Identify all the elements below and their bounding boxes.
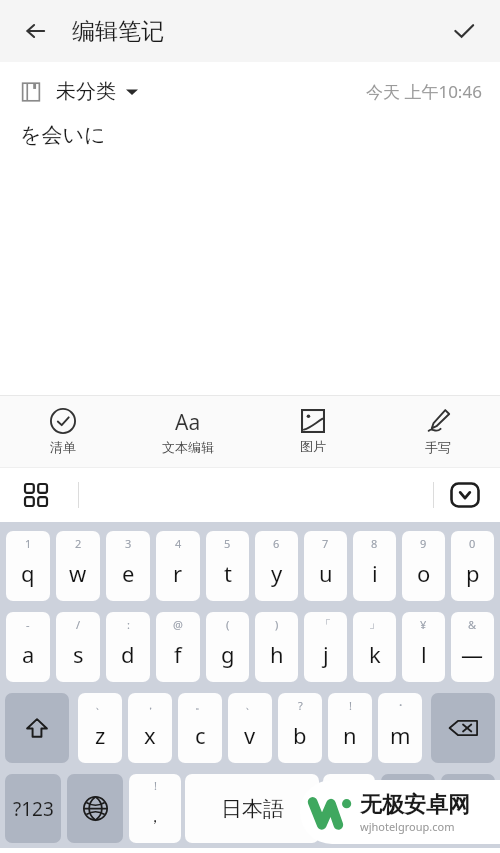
button[interactable]: Back — [14, 9, 58, 53]
staticText: ¥ — [420, 617, 427, 632]
button[interactable]: 、 — [78, 693, 122, 763]
button[interactable]: 「 — [304, 612, 347, 682]
staticText: a — [22, 639, 35, 669]
button[interactable]: ?123 — [5, 774, 61, 843]
button[interactable]: 0 — [451, 531, 494, 601]
button[interactable]: を会いに — [0, 120, 500, 395]
staticText: m — [390, 720, 411, 750]
button[interactable]: : — [106, 612, 150, 682]
button[interactable]: ・ — [378, 693, 422, 763]
button[interactable]: Keyboard menu — [14, 473, 58, 517]
button[interactable]: Hide keyboard — [444, 474, 486, 516]
staticText: 0 — [469, 536, 476, 551]
staticText: 清单 — [50, 439, 76, 455]
button[interactable]: ? — [323, 774, 375, 843]
button[interactable]: ? — [278, 693, 322, 763]
button[interactable]: 」 — [353, 612, 396, 682]
staticText: & — [468, 617, 477, 632]
button[interactable]: - — [6, 612, 50, 682]
button[interactable]: 3 — [106, 531, 150, 601]
button[interactable]: 9 — [402, 531, 445, 601]
staticText: ) — [275, 617, 279, 632]
button[interactable]: / — [56, 612, 100, 682]
button[interactable]: ! — [328, 693, 372, 763]
staticText: wjhotelgroup.com — [360, 819, 455, 834]
staticText: / — [76, 617, 81, 632]
button[interactable]: 1 — [6, 531, 50, 601]
button[interactable]: 清单 — [0, 396, 125, 467]
staticText: ， — [147, 807, 163, 827]
button[interactable]: 手写 — [375, 396, 500, 467]
staticText: h — [270, 639, 284, 669]
staticText: 。 — [341, 807, 357, 827]
button[interactable]: ¥ — [402, 612, 445, 682]
button[interactable]: 图片 — [250, 396, 375, 467]
button[interactable]: ( — [206, 612, 249, 682]
staticText: 7 — [322, 536, 329, 551]
staticText: f — [174, 639, 182, 669]
staticText: 未分类 — [56, 79, 116, 104]
staticText: 日本語 — [221, 796, 284, 822]
staticText: 今天 上午10:46 — [366, 80, 482, 103]
button[interactable]: Save — [442, 9, 486, 53]
staticText: n — [343, 720, 357, 750]
staticText: s — [73, 639, 84, 669]
button[interactable]: & — [451, 612, 494, 682]
staticText: 「 — [320, 617, 331, 631]
staticText: o — [417, 558, 431, 588]
staticText: - — [26, 617, 30, 632]
staticText: y — [271, 558, 283, 588]
staticText: 、 — [245, 698, 256, 712]
staticText: 2 — [75, 536, 82, 551]
staticText: w — [69, 558, 87, 588]
staticText: ?123 — [13, 796, 54, 822]
staticText: 」 — [369, 617, 380, 631]
staticText: g — [221, 639, 235, 669]
staticText: k — [369, 639, 381, 669]
button[interactable]: Emoji — [381, 774, 435, 843]
button[interactable]: ! — [129, 774, 181, 843]
button[interactable]: Shift — [5, 693, 69, 763]
staticText: r — [173, 558, 183, 588]
staticText: @ — [173, 617, 183, 632]
staticText: q — [21, 558, 35, 588]
button[interactable]: 6 — [255, 531, 298, 601]
staticText: 9 — [420, 536, 427, 551]
staticText: x — [144, 720, 156, 750]
button[interactable]: ) — [255, 612, 298, 682]
staticText: ! — [349, 698, 352, 713]
staticText: 8 — [371, 536, 378, 551]
staticText: Aa — [175, 408, 201, 434]
button[interactable]: 日本語 — [185, 774, 319, 843]
staticText: 3 — [125, 536, 132, 551]
button[interactable]: 2 — [56, 531, 100, 601]
staticText: v — [244, 720, 256, 750]
staticText: 编辑笔记 — [72, 17, 164, 46]
staticText: p — [466, 558, 480, 588]
button[interactable]: 8 — [353, 531, 396, 601]
staticText: 、 — [95, 698, 106, 712]
button[interactable]: Aa — [125, 396, 250, 467]
button[interactable]: 7 — [304, 531, 347, 601]
staticText: 文本编辑 — [162, 439, 214, 455]
staticText: l — [421, 639, 427, 669]
staticText: z — [95, 720, 106, 750]
button[interactable]: 。 — [178, 693, 222, 763]
button[interactable]: 4 — [156, 531, 200, 601]
staticText: ! — [154, 778, 157, 793]
staticText: e — [122, 558, 135, 588]
staticText: を会いに — [20, 122, 106, 148]
button[interactable]: Enter — [441, 774, 495, 843]
staticText: c — [195, 720, 206, 750]
staticText: ， — [145, 698, 156, 712]
button[interactable]: 未分类 — [20, 79, 138, 104]
button[interactable]: 、 — [228, 693, 272, 763]
staticText: b — [293, 720, 307, 750]
button[interactable]: 5 — [206, 531, 249, 601]
button[interactable]: ， — [128, 693, 172, 763]
button[interactable]: @ — [156, 612, 200, 682]
button[interactable]: Change language — [67, 774, 123, 843]
staticText: t — [224, 558, 232, 588]
button[interactable]: Delete — [431, 693, 495, 763]
